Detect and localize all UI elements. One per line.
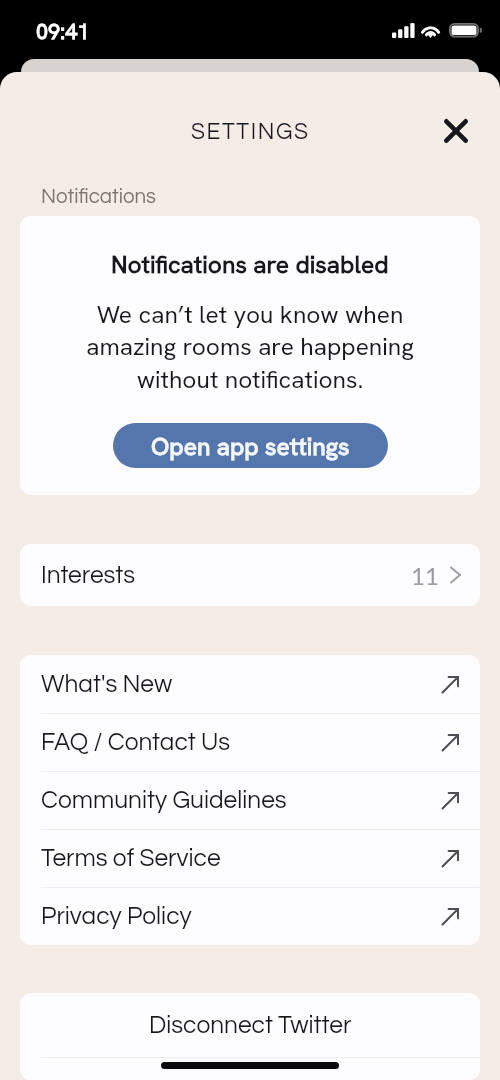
staticText: 09:41 xyxy=(36,17,90,45)
staticText: Terms of Service xyxy=(41,846,221,871)
staticText: Disconnect Twitter xyxy=(149,1013,352,1038)
button[interactable]: Open app settings xyxy=(113,423,388,468)
staticText: Interests xyxy=(41,563,136,588)
button[interactable]: FAQ / Contact Us xyxy=(20,714,480,771)
staticText: Community Guidelines xyxy=(41,788,287,813)
staticText: FAQ / Contact Us xyxy=(41,730,231,755)
staticText: Privacy Policy xyxy=(41,904,192,929)
staticText: Notifications xyxy=(41,186,156,207)
staticText: We can’t let you know when amazing rooms… xyxy=(86,298,414,396)
button[interactable]: Close settings xyxy=(437,112,475,150)
staticText: Open app settings xyxy=(151,430,350,462)
button[interactable]: Community Guidelines xyxy=(20,772,480,829)
button[interactable]: Terms of Service xyxy=(20,830,480,887)
staticText: Notifications are disabled xyxy=(111,248,389,280)
staticText: SETTINGS xyxy=(191,120,310,143)
button[interactable]: Interests xyxy=(20,544,480,606)
button[interactable]: Disconnect Twitter xyxy=(20,993,480,1057)
button[interactable]: Privacy Policy xyxy=(20,888,480,945)
staticText: What's New xyxy=(41,672,173,697)
button[interactable]: What's New xyxy=(20,655,480,713)
staticText: 11 xyxy=(411,561,439,590)
